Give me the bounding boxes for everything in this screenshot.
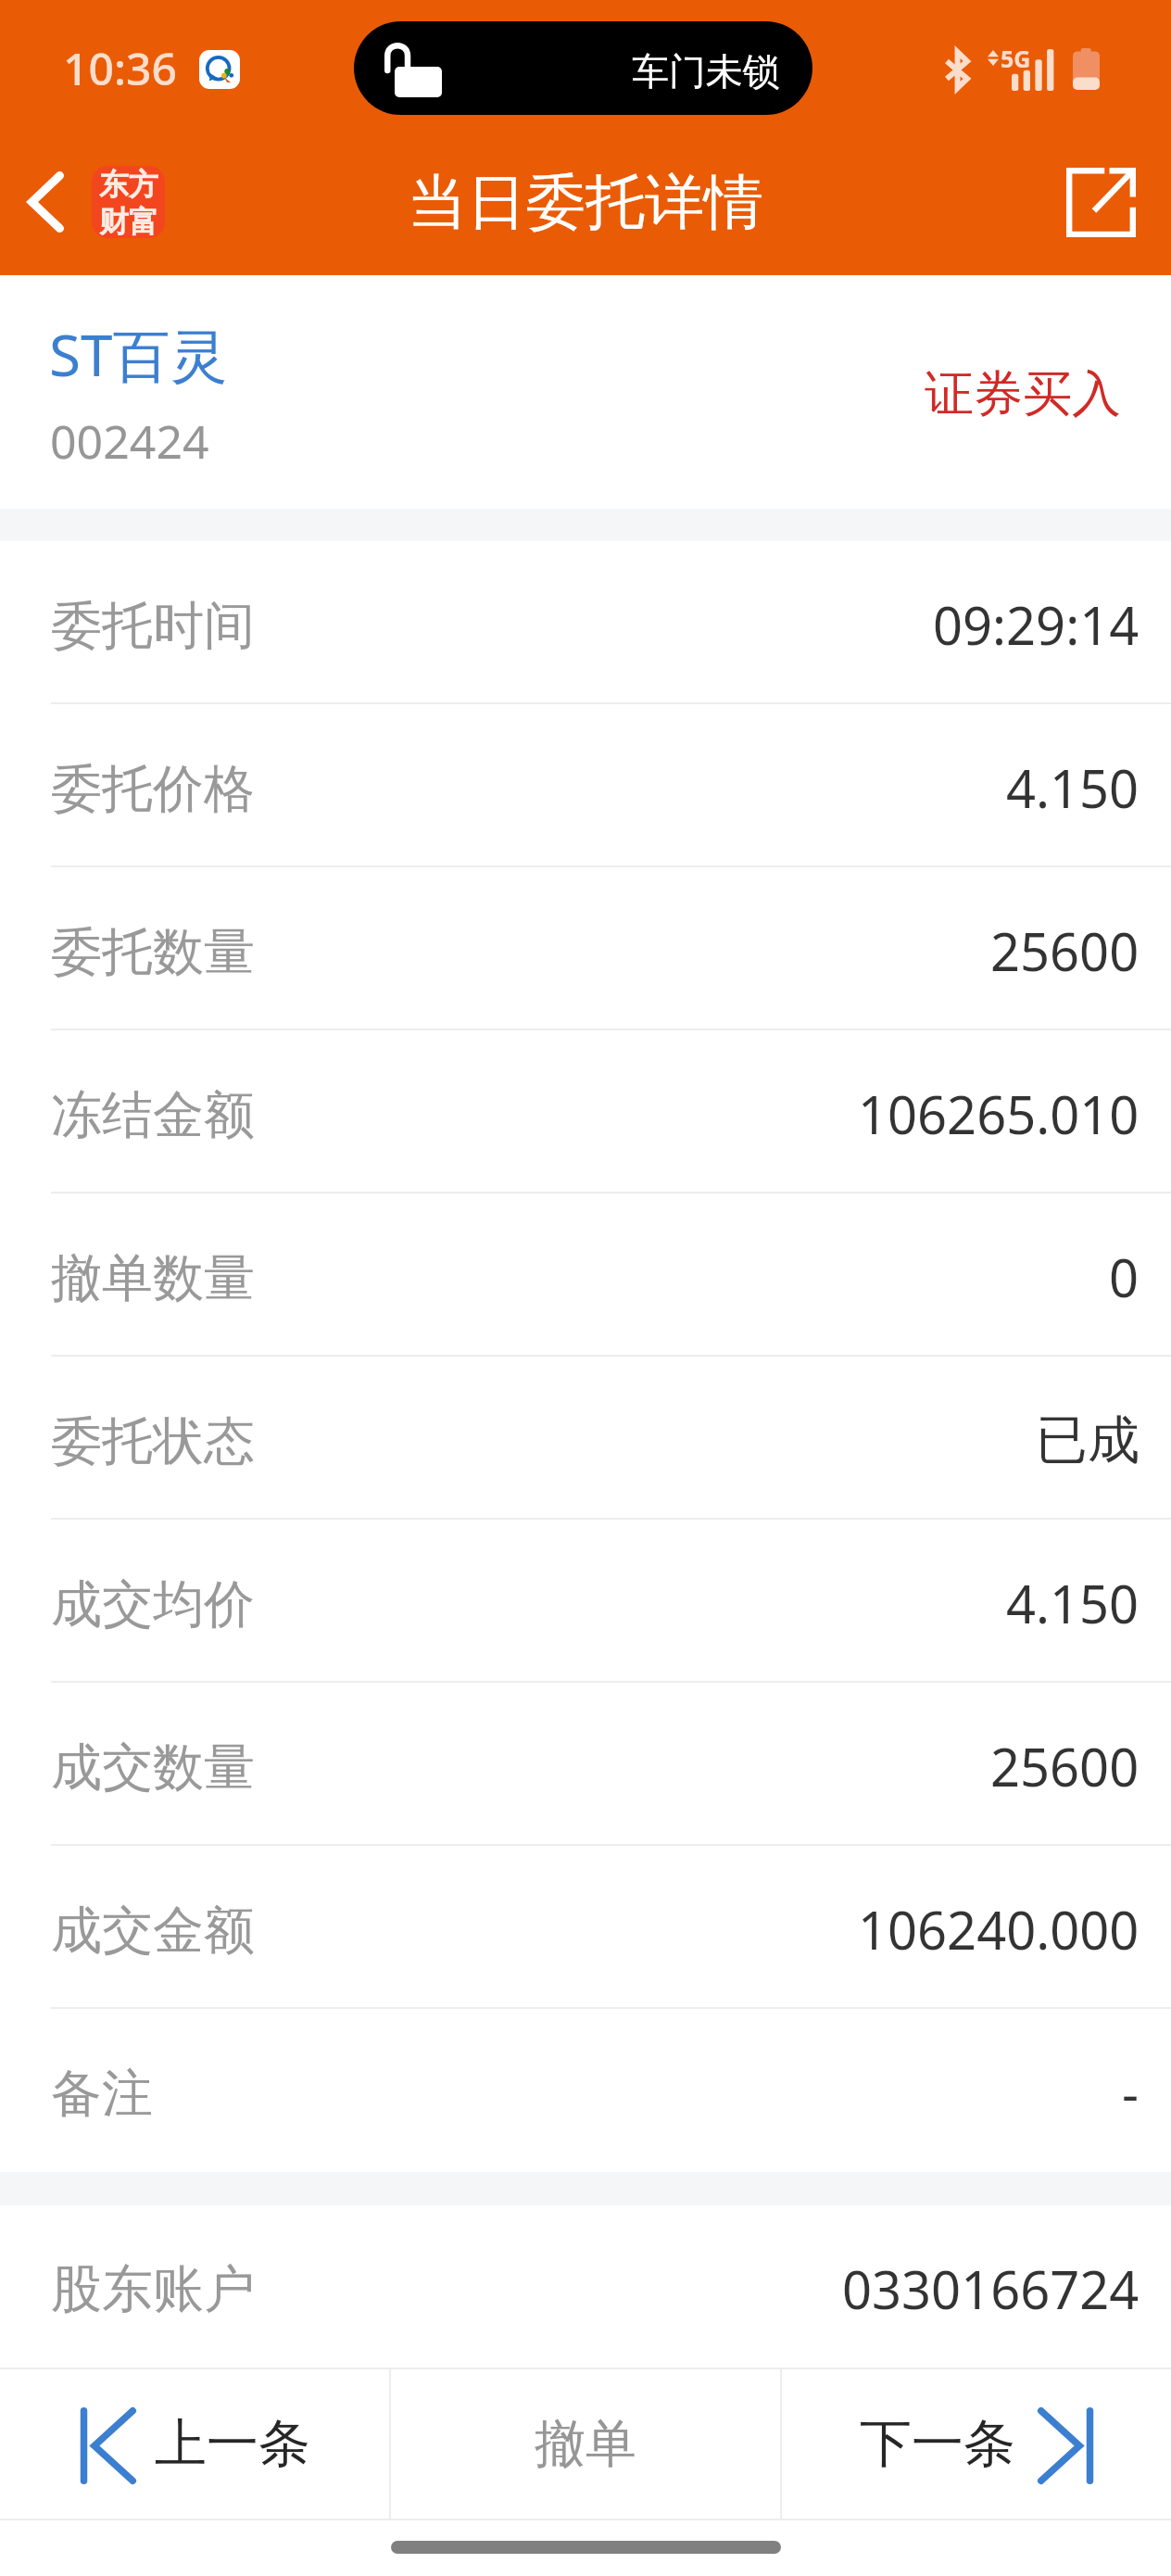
staticText: 冻结金额 <box>51 1083 255 1147</box>
staticText: ST百灵 <box>49 315 228 394</box>
staticText: 备注 <box>51 2062 153 2126</box>
staticText: 25600 <box>990 1731 1140 1801</box>
staticText: 成交金额 <box>51 1899 255 1963</box>
staticText: 4.150 <box>1006 1568 1140 1638</box>
staticText: - <box>1122 2057 1140 2128</box>
staticText: 委托数量 <box>51 920 255 984</box>
staticText: 委托时间 <box>51 594 255 658</box>
staticText: 0 <box>1109 1242 1140 1312</box>
staticText: 002424 <box>50 410 209 473</box>
staticText: 下一条 <box>860 2411 1015 2477</box>
staticText: 4.150 <box>1006 752 1140 823</box>
button[interactable]: Back <box>28 148 165 256</box>
button[interactable]: 撤单 <box>391 2369 780 2519</box>
staticText: 当日委托详情 <box>408 165 763 240</box>
button[interactable]: 备注 <box>0 2009 1171 2172</box>
button[interactable]: 冻结金额 <box>0 1030 1171 1193</box>
staticText: 撤单数量 <box>51 1246 255 1310</box>
button[interactable]: 上一条 <box>0 2369 389 2519</box>
button[interactable]: 撤单数量 <box>0 1193 1171 1357</box>
staticText: 上一条 <box>155 2411 310 2477</box>
staticText: 车门未锁 <box>632 48 780 95</box>
staticText: 成交数量 <box>51 1736 255 1799</box>
staticText: 股东账户 <box>51 2257 255 2321</box>
button[interactable]: 委托状态 <box>0 1357 1171 1520</box>
staticText: 106240.000 <box>858 1894 1140 1964</box>
staticText: 5G <box>1001 43 1031 74</box>
staticText: 东方 <box>99 166 158 203</box>
button[interactable]: 委托价格 <box>0 704 1171 867</box>
staticText: 成交均价 <box>51 1572 255 1636</box>
staticText: 撤单 <box>535 2412 636 2476</box>
staticText: 委托价格 <box>51 757 255 821</box>
staticText: 委托状态 <box>51 1409 255 1473</box>
button[interactable]: Share <box>1047 148 1154 256</box>
staticText: 09:29:14 <box>933 589 1140 660</box>
button[interactable]: 成交均价 <box>0 1520 1171 1683</box>
button[interactable]: 成交金额 <box>0 1846 1171 2009</box>
button[interactable]: 成交数量 <box>0 1683 1171 1846</box>
button[interactable]: 委托数量 <box>0 867 1171 1030</box>
staticText: 10:36 <box>63 38 177 98</box>
staticText: 已成 <box>1036 1408 1140 1473</box>
button[interactable]: 委托时间 <box>0 541 1171 704</box>
staticText: 证券买入 <box>925 363 1121 425</box>
staticText: 25600 <box>990 915 1140 986</box>
staticText: 106265.010 <box>858 1079 1140 1149</box>
button[interactable]: 下一条 <box>782 2369 1171 2519</box>
staticText: 0330166724 <box>842 2254 1140 2324</box>
button[interactable]: 股东账户 <box>0 2205 1171 2368</box>
staticText: 财富 <box>99 203 158 238</box>
